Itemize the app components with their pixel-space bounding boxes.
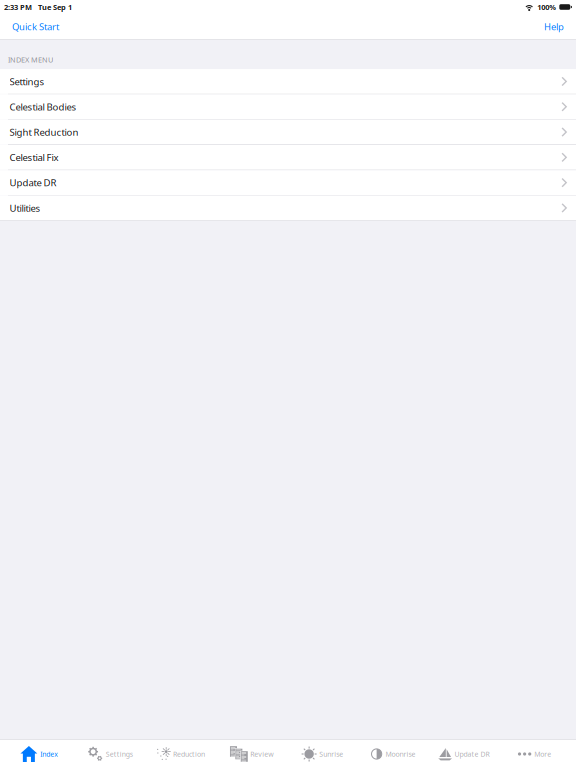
button[interactable]: Reduction	[145, 740, 216, 768]
staticText: 100%	[537, 2, 556, 12]
staticText: Sunrise	[319, 749, 343, 759]
staticText: 2:33 PM	[4, 2, 32, 12]
button[interactable]: More	[499, 740, 570, 768]
staticText: INDEX MENU	[8, 55, 53, 65]
button[interactable]: Utilities	[0, 196, 576, 220]
staticText: Update DR	[9, 176, 56, 189]
staticText: Celestial Fix	[9, 151, 58, 164]
button[interactable]: Help	[534, 15, 576, 38]
staticText: Reduction	[173, 749, 205, 759]
staticText: Celestial Bodies	[9, 100, 76, 113]
staticText: Moonrise	[385, 749, 415, 759]
button[interactable]: Celestial Bodies	[0, 94, 576, 119]
staticText: Review	[250, 749, 273, 759]
staticText: More	[534, 749, 551, 759]
button[interactable]: Settings	[0, 69, 576, 94]
staticText: Index	[40, 749, 58, 759]
staticText: Tue Sep 1	[38, 2, 72, 12]
button[interactable]: Index	[4, 740, 75, 768]
button[interactable]: Moonrise	[358, 740, 429, 768]
button[interactable]: Update DR	[428, 740, 499, 768]
staticText: Settings	[9, 75, 44, 88]
button[interactable]: Celestial Fix	[0, 145, 576, 170]
button[interactable]: Sight Reduction	[0, 120, 576, 144]
staticText: Utilities	[9, 201, 40, 214]
button[interactable]: Sunrise	[287, 740, 358, 768]
button[interactable]: Quick Start	[0, 15, 69, 38]
staticText: Help	[544, 20, 564, 33]
button[interactable]: Settings	[75, 740, 146, 768]
button[interactable]: Review	[216, 740, 287, 768]
button[interactable]: Update DR	[0, 170, 576, 195]
staticText: Sight Reduction	[9, 125, 78, 139]
staticText: Quick Start	[12, 20, 59, 33]
staticText: Settings	[106, 749, 133, 759]
staticText: Update DR	[454, 749, 489, 759]
